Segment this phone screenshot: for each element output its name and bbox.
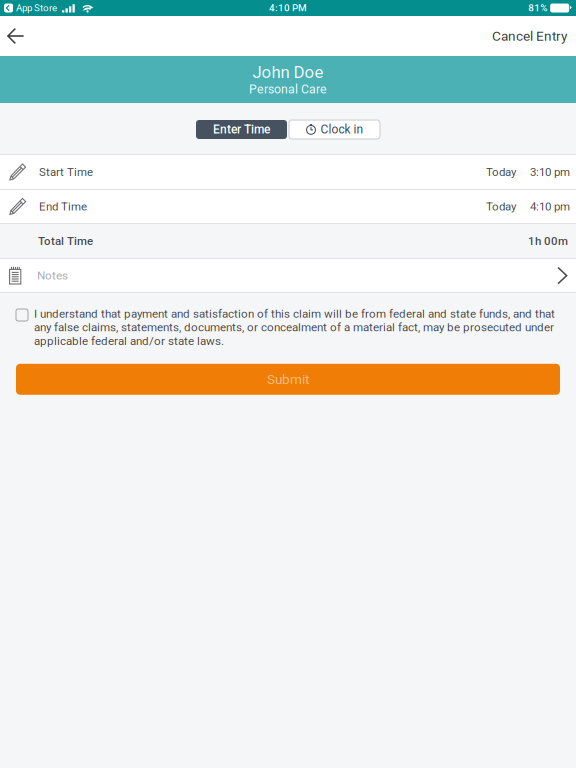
button[interactable]: Submit — [16, 364, 560, 395]
button[interactable]: Notes — [0, 259, 576, 292]
button[interactable]: Clock in — [289, 120, 380, 139]
staticText: 1h 00m — [528, 234, 568, 248]
button[interactable]: I understand checkbox — [16, 307, 28, 321]
staticText: Enter Time — [213, 122, 270, 137]
staticText: Cancel Entry — [492, 28, 567, 44]
button[interactable]: Back — [0, 16, 39, 56]
button[interactable]: Start Time — [0, 155, 576, 189]
staticText: 4:10 PM — [269, 2, 307, 14]
staticText: 3:10 pm — [530, 165, 570, 179]
staticText: End Time — [39, 200, 87, 213]
staticText: Clock in — [320, 122, 363, 137]
staticText: Today — [486, 165, 516, 179]
staticText: 4:10 pm — [530, 200, 570, 213]
staticText: Notes — [37, 269, 68, 282]
staticText: I understand that payment and satisfacti… — [34, 307, 555, 348]
staticText: 81% — [528, 2, 547, 14]
staticText: Start Time — [39, 165, 93, 179]
button[interactable]: Cancel Entry — [478, 16, 576, 56]
staticText: John Doe — [252, 62, 323, 82]
button[interactable]: Enter Time — [196, 120, 287, 139]
staticText: Personal Care — [249, 82, 327, 97]
staticText: Today — [486, 200, 516, 213]
button[interactable]: End Time — [0, 190, 576, 223]
staticText: App Store — [16, 2, 57, 14]
staticText: Total Time — [38, 234, 93, 248]
staticText: Submit — [267, 371, 309, 387]
